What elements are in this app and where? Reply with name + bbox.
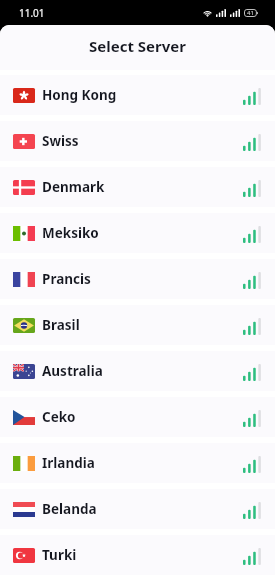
button[interactable]: Ceko — [0, 397, 275, 437]
staticText: 11.01 — [19, 6, 45, 20]
other: Signal strength — [243, 456, 261, 473]
staticText: Select Server — [89, 36, 186, 56]
button[interactable]: Prancis — [0, 259, 275, 299]
staticText: 41 — [247, 9, 254, 17]
staticText: Prancis — [42, 270, 91, 288]
button[interactable]: Turki — [0, 535, 275, 575]
staticText: Denmark — [42, 178, 105, 196]
staticText: Ceko — [42, 408, 76, 426]
staticText: Belanda — [42, 500, 97, 518]
staticText: Swiss — [42, 132, 79, 150]
other: Signal strength — [243, 502, 261, 519]
other: Signal strength — [243, 134, 261, 151]
other: Signal strength — [243, 180, 261, 197]
other: Signal strength — [243, 88, 261, 105]
staticText: Australia — [42, 362, 103, 380]
button[interactable]: Swiss — [0, 121, 275, 161]
other: Signal strength — [243, 548, 261, 565]
button[interactable]: Hong Kong — [0, 75, 275, 115]
button[interactable]: Meksiko — [0, 213, 275, 253]
other: Signal strength — [243, 410, 261, 427]
button[interactable]: Irlandia — [0, 443, 275, 483]
button[interactable]: Brasil — [0, 305, 275, 345]
other: Signal strength — [243, 318, 261, 335]
other: Signal strength — [243, 364, 261, 381]
other: Signal strength — [243, 272, 261, 289]
staticText: Brasil — [42, 316, 80, 334]
staticText: Irlandia — [42, 454, 95, 472]
staticText: Meksiko — [42, 224, 99, 242]
button[interactable]: Denmark — [0, 167, 275, 207]
button[interactable]: Belanda — [0, 489, 275, 529]
staticText: Turki — [42, 546, 77, 564]
button[interactable]: Australia — [0, 351, 275, 391]
other: Signal strength — [243, 226, 261, 243]
staticText: Hong Kong — [42, 86, 117, 104]
